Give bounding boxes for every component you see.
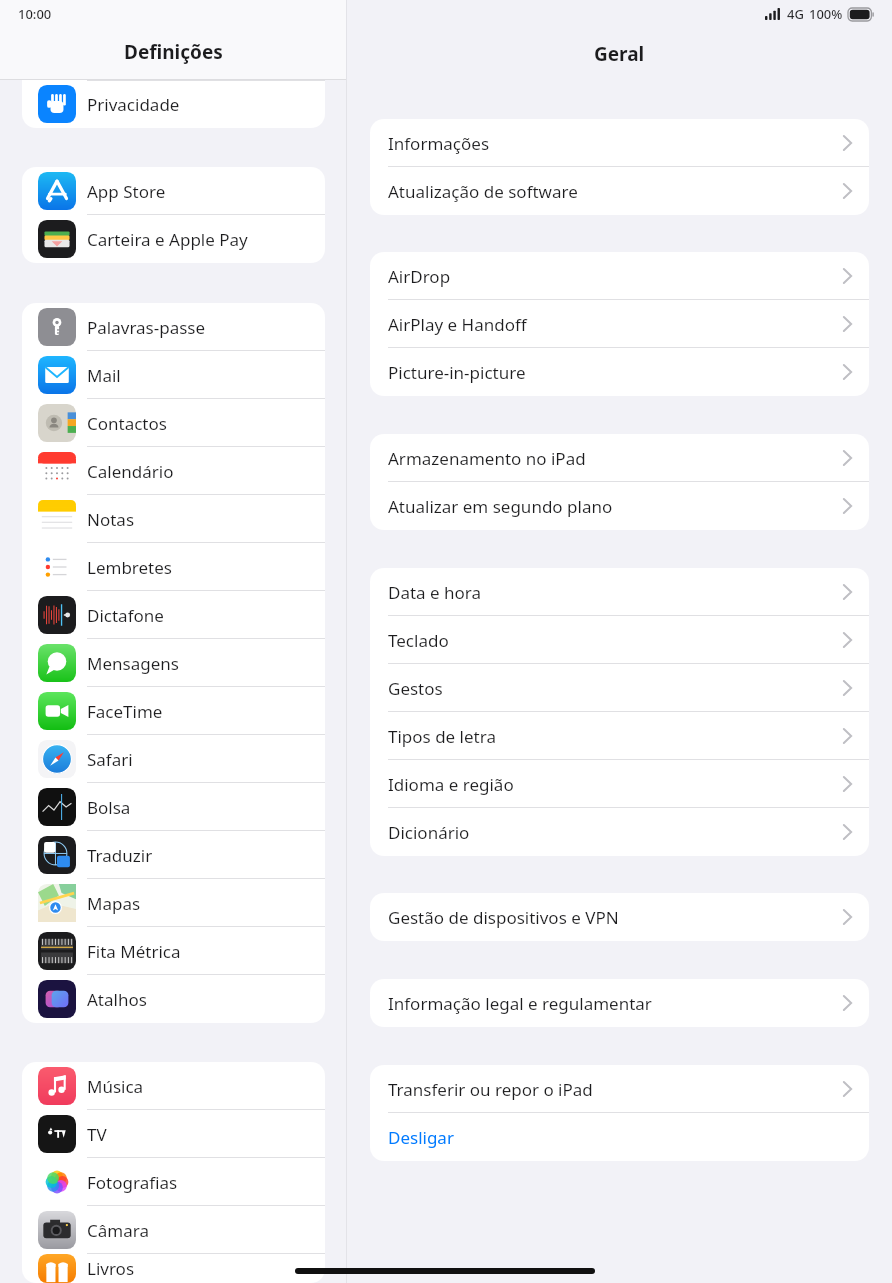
button[interactable]: Dictafone <box>22 591 325 639</box>
staticText: Atualizar em segundo plano <box>388 495 613 518</box>
staticText: AirDrop <box>388 265 451 288</box>
button[interactable]: Dicionário <box>370 808 869 856</box>
button[interactable]: Gestos <box>370 664 869 712</box>
button[interactable]: Palavras-passe <box>22 303 325 351</box>
button[interactable]: Idioma e região <box>370 760 869 808</box>
button[interactable]: Armazenamento no iPad <box>370 434 869 482</box>
staticText: Picture-in-picture <box>388 361 526 384</box>
button[interactable]: Mail <box>22 351 325 399</box>
button[interactable]: Informação legal e regulamentar <box>370 979 869 1027</box>
button[interactable]: Lembretes <box>22 543 325 591</box>
staticText: Dictafone <box>87 604 164 627</box>
staticText: Teclado <box>388 629 449 652</box>
button[interactable]: FaceTime <box>22 687 325 735</box>
staticText: Definições <box>124 39 223 65</box>
button[interactable]: Safari <box>22 735 325 783</box>
staticText: Traduzir <box>87 844 153 867</box>
staticText: Notas <box>87 508 135 531</box>
button[interactable]: Mapas <box>22 879 325 927</box>
staticText: Desligar <box>388 1126 454 1149</box>
button[interactable]: Transferir ou repor o iPad <box>370 1065 869 1113</box>
button[interactable]: Câmara <box>22 1206 325 1254</box>
staticText: Armazenamento no iPad <box>388 447 586 470</box>
staticText: Música <box>87 1075 144 1098</box>
button[interactable]: AirDrop <box>370 252 869 300</box>
staticText: TV <box>87 1123 107 1146</box>
staticText: 10:00 <box>18 5 52 23</box>
staticText: Mapas <box>87 892 141 915</box>
button[interactable]: Fita Métrica <box>22 927 325 975</box>
staticText: Câmara <box>87 1219 149 1242</box>
staticText: Informação legal e regulamentar <box>388 992 652 1015</box>
staticText: Informações <box>388 132 490 155</box>
button[interactable]: Atualização de software <box>370 167 869 215</box>
staticText: Atalhos <box>87 988 147 1011</box>
staticText: 100% <box>809 5 843 23</box>
button[interactable]: Teclado <box>370 616 869 664</box>
staticText: Contactos <box>87 412 167 435</box>
button[interactable]: Informações <box>370 119 869 167</box>
staticText: Gestos <box>388 677 443 700</box>
button[interactable]: Atualizar em segundo plano <box>370 482 869 530</box>
staticText: Safari <box>87 748 133 771</box>
staticText: Fotografias <box>87 1171 178 1194</box>
staticText: Carteira e Apple Pay <box>87 228 248 251</box>
staticText: Mensagens <box>87 652 179 675</box>
button[interactable]: Fotografias <box>22 1158 325 1206</box>
staticText: Idioma e região <box>388 773 514 796</box>
button[interactable]: Notas <box>22 495 325 543</box>
button[interactable]: Atalhos <box>22 975 325 1023</box>
staticText: 4G <box>787 5 804 23</box>
staticText: Gestão de dispositivos e VPN <box>388 906 619 929</box>
staticText: Dicionário <box>388 821 470 844</box>
button[interactable]: Mensagens <box>22 639 325 687</box>
staticText: Calendário <box>87 460 174 483</box>
staticText: Livros <box>87 1257 135 1280</box>
staticText: Mail <box>87 364 121 387</box>
staticText: Privacidade <box>87 93 180 116</box>
button[interactable]: Livros <box>22 1254 325 1283</box>
button[interactable]: Tipos de letra <box>370 712 869 760</box>
button[interactable]: Bolsa <box>22 783 325 831</box>
button[interactable]: Traduzir <box>22 831 325 879</box>
staticText: Palavras-passe <box>87 316 206 339</box>
staticText: Transferir ou repor o iPad <box>388 1078 593 1101</box>
button[interactable]: Desligar <box>370 1113 869 1161</box>
staticText: AirPlay e Handoff <box>388 313 527 336</box>
staticText: Atualização de software <box>388 180 578 203</box>
staticText: Fita Métrica <box>87 940 181 963</box>
button[interactable]: TV <box>22 1110 325 1158</box>
button[interactable]: Gestão de dispositivos e VPN <box>370 893 869 941</box>
staticText: Tipos de letra <box>388 725 496 748</box>
staticText: Geral <box>594 41 645 67</box>
staticText: Lembretes <box>87 556 172 579</box>
staticText: Bolsa <box>87 796 131 819</box>
button[interactable]: Carteira e Apple Pay <box>22 215 325 263</box>
button[interactable]: Contactos <box>22 399 325 447</box>
button[interactable]: App Store <box>22 167 325 215</box>
button[interactable]: Data e hora <box>370 568 869 616</box>
button[interactable]: AirPlay e Handoff <box>370 300 869 348</box>
staticText: Data e hora <box>388 581 482 604</box>
button[interactable]: Calendário <box>22 447 325 495</box>
button[interactable]: Música <box>22 1062 325 1110</box>
button[interactable]: Picture-in-picture <box>370 348 869 396</box>
button[interactable]: Privacidade <box>22 80 325 128</box>
staticText: App Store <box>87 180 166 203</box>
staticText: FaceTime <box>87 700 163 723</box>
